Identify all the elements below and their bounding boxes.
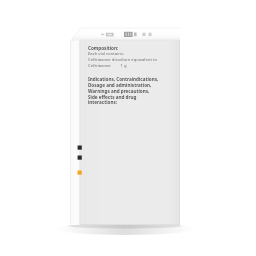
staticText: Warnings and precautions,	[88, 88, 150, 94]
button[interactable]: Ceftriaxone carton product photo	[0, 0, 256, 256]
staticText: Ceftriaxone disodium equivalent to	[88, 57, 158, 63]
staticText: Composition:	[88, 45, 119, 51]
staticText: Ceftriaxone 1 g	[88, 63, 127, 69]
staticText: Side effects and drug interactions:	[88, 94, 164, 105]
staticText: Each vial contains:	[88, 51, 124, 57]
staticText: Indications, Contraindications,	[88, 76, 159, 82]
staticText: Dosage and administration,	[88, 82, 152, 88]
button[interactable]: Composition:	[88, 45, 164, 105]
